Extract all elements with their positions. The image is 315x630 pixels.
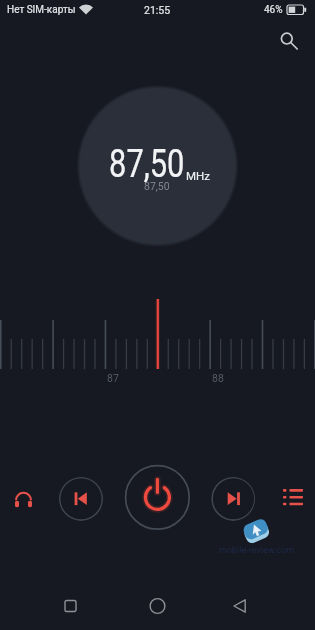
button[interactable] [4, 479, 44, 519]
button[interactable] [124, 464, 191, 531]
staticText: Нет SIM-карты [7, 4, 76, 16]
staticText: 87,50 [144, 180, 170, 192]
staticText: 87,50 [109, 141, 185, 187]
staticText: 87 [107, 372, 119, 384]
staticText: mobile-review.com [219, 545, 295, 556]
button[interactable] [267, 19, 307, 59]
staticText: 88 [212, 372, 224, 384]
button[interactable] [211, 477, 255, 521]
button[interactable] [59, 477, 103, 521]
staticText: 21:55 [144, 4, 171, 16]
staticText: 46% [264, 4, 283, 16]
button[interactable] [133, 586, 181, 626]
button[interactable] [216, 586, 264, 626]
button[interactable] [273, 478, 313, 518]
staticText: MHz [186, 169, 210, 182]
button[interactable] [46, 586, 94, 626]
